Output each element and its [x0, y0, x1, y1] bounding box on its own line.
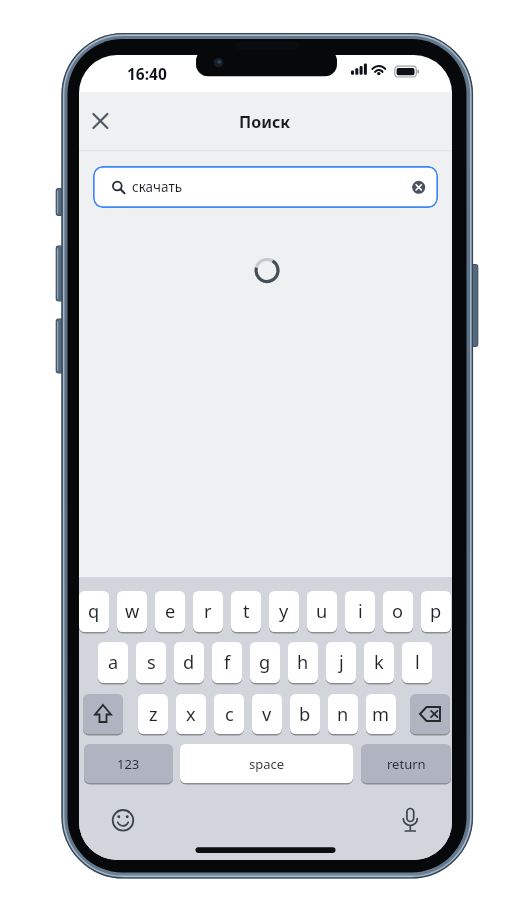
button[interactable]: v	[252, 694, 282, 734]
button[interactable]: f	[212, 642, 242, 683]
staticText: m	[372, 702, 390, 727]
button[interactable]: j	[326, 642, 356, 683]
staticText: return	[387, 755, 426, 773]
button[interactable]: y	[269, 591, 299, 632]
button[interactable]: b	[290, 694, 320, 734]
staticText: c	[225, 702, 234, 727]
staticText: скачать	[132, 178, 183, 196]
button[interactable]: h	[288, 642, 318, 683]
staticText: x	[186, 702, 196, 727]
staticText: j	[339, 650, 344, 675]
staticText: o	[392, 599, 404, 624]
staticText: b	[299, 702, 311, 727]
button[interactable]: k	[364, 642, 394, 683]
staticText: h	[297, 650, 309, 675]
staticText: z	[149, 702, 158, 727]
staticText: l	[415, 650, 420, 675]
button[interactable]: g	[250, 642, 280, 683]
staticText: s	[147, 650, 156, 675]
staticText: g	[259, 650, 271, 675]
staticText: y	[279, 599, 289, 624]
staticText: e	[165, 599, 176, 624]
button[interactable]: p	[421, 591, 451, 632]
button[interactable]: o	[383, 591, 413, 632]
button[interactable]: n	[328, 694, 358, 734]
staticText: f	[224, 650, 231, 675]
staticText: p	[430, 599, 442, 624]
staticText: r	[204, 599, 212, 624]
button[interactable]: a	[98, 642, 128, 683]
staticText: n	[337, 702, 349, 727]
button[interactable]: u	[307, 591, 337, 632]
staticText: space	[249, 755, 285, 773]
button[interactable]: s	[136, 642, 166, 683]
button[interactable]: return	[361, 744, 451, 783]
button[interactable]: q	[79, 591, 109, 632]
staticText: 123	[117, 755, 140, 773]
button[interactable]: c	[214, 694, 244, 734]
button[interactable]: t	[231, 591, 261, 632]
button[interactable]: r	[193, 591, 223, 632]
button[interactable]: z	[138, 694, 168, 734]
staticText: 16:40	[127, 63, 167, 81]
button[interactable]	[83, 694, 123, 734]
button[interactable]	[410, 694, 450, 734]
button[interactable]	[394, 804, 427, 837]
button[interactable]	[90, 110, 111, 132]
staticText: i	[358, 599, 363, 624]
button[interactable]: w	[117, 591, 147, 632]
button[interactable]	[106, 804, 140, 837]
button[interactable]: space	[180, 744, 353, 783]
button[interactable]: m	[366, 694, 396, 734]
button[interactable]: скачать	[93, 166, 438, 208]
staticText: u	[316, 599, 328, 624]
button[interactable]: l	[402, 642, 432, 683]
staticText: t	[243, 599, 250, 624]
button[interactable]: 123	[84, 744, 173, 783]
staticText: k	[374, 650, 384, 675]
staticText: w	[125, 599, 140, 624]
staticText: Поиск	[239, 111, 291, 131]
staticText: d	[183, 650, 195, 675]
button[interactable]: x	[176, 694, 206, 734]
staticText: q	[88, 599, 100, 624]
button[interactable]: i	[345, 591, 375, 632]
button[interactable]: e	[155, 591, 185, 632]
staticText: v	[262, 702, 272, 727]
button[interactable]: d	[174, 642, 204, 683]
staticText: a	[108, 650, 119, 675]
